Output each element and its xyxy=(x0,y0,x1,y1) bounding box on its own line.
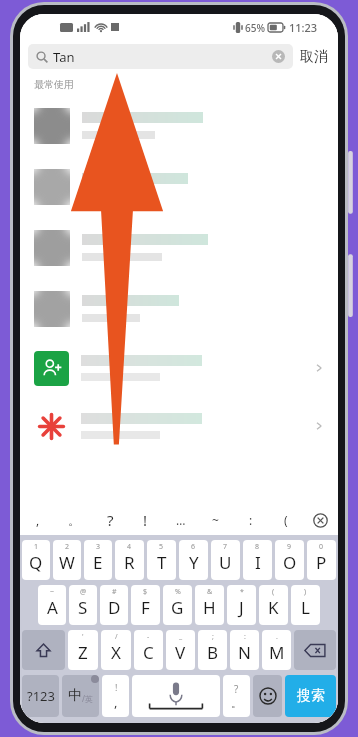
button[interactable]: : xyxy=(233,505,268,535)
button[interactable]: @ xyxy=(69,585,97,625)
button[interactable]: ' xyxy=(68,630,98,670)
staticText: 4 xyxy=(127,542,132,552)
staticText: ~ xyxy=(50,587,55,597)
staticText: C xyxy=(143,641,154,664)
button[interactable]: ! xyxy=(128,505,163,535)
button[interactable]: Space xyxy=(132,675,220,717)
button[interactable]: 6 xyxy=(179,540,208,580)
button[interactable]: * xyxy=(227,585,256,625)
staticText: 65% xyxy=(245,21,265,35)
staticText: 8 xyxy=(255,542,260,552)
staticText: Q xyxy=(29,551,43,574)
button[interactable]: ! xyxy=(102,675,129,717)
staticText: ( xyxy=(272,587,275,597)
button[interactable] xyxy=(20,278,338,339)
button[interactable]: Emoji xyxy=(253,675,282,717)
button[interactable]: : xyxy=(230,630,259,670)
staticText: 9 xyxy=(287,542,292,552)
staticText: . xyxy=(276,632,278,642)
button[interactable]: $ xyxy=(131,585,160,625)
button[interactable]: App xyxy=(20,397,338,455)
staticText: 3 xyxy=(96,542,101,552)
staticText: 7 xyxy=(223,542,228,552)
button[interactable]: 中 xyxy=(62,675,99,717)
staticText: A xyxy=(47,596,58,619)
button[interactable]: 搜索 xyxy=(285,675,336,717)
staticText: L xyxy=(301,596,310,619)
staticText: ? xyxy=(234,682,239,696)
button[interactable] xyxy=(20,156,338,217)
button[interactable]: ? xyxy=(92,505,128,535)
staticText: 中 xyxy=(68,687,82,705)
staticText: ?123 xyxy=(27,687,55,705)
button[interactable]: ?123 xyxy=(22,675,59,717)
button[interactable]: / xyxy=(101,630,131,670)
staticText: K xyxy=(268,596,279,619)
staticText: ) xyxy=(304,587,307,597)
button[interactable]: Shift xyxy=(22,630,65,670)
button[interactable]: ) xyxy=(291,585,320,625)
staticText: O xyxy=(283,551,297,574)
button[interactable]: ? xyxy=(223,675,250,717)
staticText: 0 xyxy=(319,542,324,552)
button[interactable]: & xyxy=(195,585,224,625)
button[interactable]: # xyxy=(100,585,128,625)
button[interactable]: ; xyxy=(198,630,227,670)
staticText: /英 xyxy=(82,693,93,704)
staticText: , xyxy=(36,512,40,528)
button[interactable]: 7 xyxy=(211,540,240,580)
button[interactable]: … xyxy=(163,505,198,535)
staticText: 最常使用 xyxy=(34,78,74,91)
staticText: X xyxy=(111,641,121,664)
button[interactable]: % xyxy=(163,585,192,625)
button[interactable]: 4 xyxy=(115,540,144,580)
staticText: P xyxy=(316,551,327,574)
staticText: : xyxy=(249,512,253,528)
button[interactable]: Add contact xyxy=(20,339,338,397)
staticText: S xyxy=(78,596,88,619)
button[interactable]: 0 xyxy=(307,540,336,580)
staticText: B xyxy=(207,641,219,664)
staticText: Z xyxy=(78,641,88,664)
staticText: / xyxy=(115,632,118,642)
button[interactable]: ( xyxy=(259,585,288,625)
button[interactable]: Tan xyxy=(28,44,293,69)
button[interactable]: Delete xyxy=(303,505,338,535)
button[interactable]: 8 xyxy=(243,540,272,580)
button[interactable]: Clear xyxy=(272,50,285,63)
staticText: V xyxy=(175,641,186,664)
button[interactable] xyxy=(20,95,338,156)
button[interactable]: Backspace xyxy=(294,630,336,670)
button[interactable]: 取消 xyxy=(300,48,328,66)
staticText: D xyxy=(108,596,121,619)
button[interactable]: _ xyxy=(166,630,195,670)
staticText: I xyxy=(255,551,261,574)
button[interactable]: 3 xyxy=(84,540,112,580)
button[interactable]: . xyxy=(262,630,291,670)
staticText: ; xyxy=(212,632,214,642)
button[interactable]: - xyxy=(134,630,163,670)
button[interactable]: 1 xyxy=(22,540,50,580)
staticText: : xyxy=(244,632,246,642)
staticText: % xyxy=(175,587,181,597)
staticText: Tan xyxy=(53,48,75,66)
button[interactable] xyxy=(20,217,338,278)
staticText: H xyxy=(203,596,216,619)
other: App xyxy=(34,409,69,444)
button[interactable]: 。 xyxy=(56,505,92,535)
button[interactable]: , xyxy=(20,505,56,535)
staticText: ' xyxy=(82,632,84,642)
button[interactable]: 2 xyxy=(53,540,81,580)
staticText: $ xyxy=(143,587,148,597)
staticText: R xyxy=(124,551,135,574)
button[interactable]: ( xyxy=(268,505,303,535)
button[interactable]: 9 xyxy=(275,540,304,580)
staticText: 取消 xyxy=(300,48,328,66)
button[interactable]: ~ xyxy=(198,505,233,535)
staticText: & xyxy=(207,587,213,597)
button[interactable]: 5 xyxy=(147,540,176,580)
staticText: E xyxy=(93,551,103,574)
staticText: 。 xyxy=(231,696,242,710)
staticText: - xyxy=(147,632,150,642)
button[interactable]: ~ xyxy=(38,585,66,625)
